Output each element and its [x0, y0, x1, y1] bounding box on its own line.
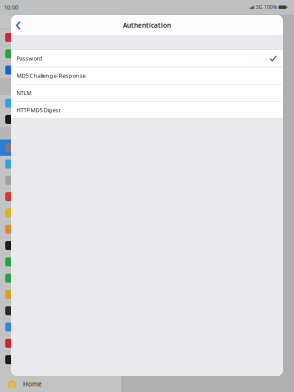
staticText: 100%: [264, 4, 277, 10]
staticText: 3G: [256, 4, 262, 10]
staticText: NTLM: [16, 89, 31, 97]
staticText: MD5 Challenge-Response: [16, 72, 85, 79]
button[interactable]: NTLM: [11, 84, 283, 101]
staticText: Home: [23, 380, 42, 388]
button[interactable]: MD5 Challenge-Response: [11, 67, 283, 84]
staticText: HTTP MD5 Digest: [16, 106, 60, 114]
button[interactable]: Back: [11, 15, 29, 36]
staticText: Authentication: [123, 21, 171, 30]
button[interactable]: Password: [11, 50, 283, 67]
button[interactable]: Home: [0, 376, 294, 392]
button[interactable]: HTTP MD5 Digest: [11, 102, 283, 119]
staticText: Password: [16, 54, 42, 62]
staticText: 10:00: [4, 3, 18, 11]
